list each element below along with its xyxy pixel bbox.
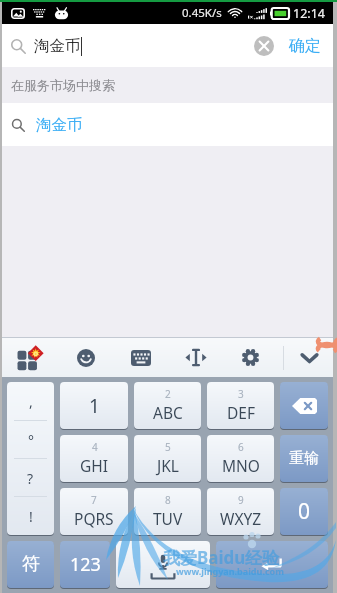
button[interactable]: 符 bbox=[7, 541, 54, 588]
button[interactable]: 确定 bbox=[281, 24, 333, 67]
staticText: 123 bbox=[70, 552, 101, 577]
staticText: 5 bbox=[165, 440, 171, 454]
staticText: 符 bbox=[22, 553, 40, 576]
button[interactable]: 重输 bbox=[280, 435, 328, 482]
staticText: ABC bbox=[153, 402, 183, 423]
staticText: 4 bbox=[92, 440, 98, 454]
staticText: 重输 bbox=[289, 449, 319, 468]
other: Backspace bbox=[292, 398, 317, 414]
staticText: PQRS bbox=[74, 508, 114, 529]
staticText: ? bbox=[27, 469, 34, 488]
button[interactable]: Space / voice input bbox=[116, 541, 210, 588]
staticText: 1 bbox=[89, 393, 100, 419]
staticText: 淘金币 bbox=[34, 36, 81, 56]
button[interactable]: Move cursor bbox=[168, 338, 223, 377]
staticText: 淘金币 bbox=[36, 115, 83, 135]
staticText: 确定 bbox=[289, 36, 321, 56]
button[interactable]: Apps bbox=[2, 338, 58, 377]
button[interactable]: 6 bbox=[207, 435, 274, 482]
staticText: 8 bbox=[165, 493, 171, 507]
staticText: 在服务市场中搜索 bbox=[11, 77, 115, 93]
staticText: DEF bbox=[227, 402, 255, 423]
button[interactable]: Clear text bbox=[247, 24, 281, 67]
staticText: , bbox=[29, 392, 33, 411]
staticText: 12:14 bbox=[293, 5, 325, 22]
button[interactable]: 7 bbox=[60, 488, 128, 535]
button[interactable]: 3 bbox=[207, 382, 274, 429]
button[interactable]: 5 bbox=[134, 435, 201, 482]
button[interactable]: , bbox=[7, 382, 54, 421]
button[interactable]: ? bbox=[7, 459, 54, 497]
button[interactable]: 123 bbox=[60, 541, 110, 588]
other: Enter bbox=[260, 556, 284, 573]
staticText: WXYZ bbox=[220, 508, 262, 529]
button[interactable]: 1 bbox=[60, 382, 128, 429]
button[interactable]: 2 bbox=[134, 382, 201, 429]
staticText: ! bbox=[29, 507, 33, 526]
staticText: 0 bbox=[298, 497, 311, 526]
button[interactable]: 8 bbox=[134, 488, 201, 535]
button[interactable]: Keyboard bbox=[113, 338, 168, 377]
staticText: 2 bbox=[165, 387, 171, 401]
staticText: 6 bbox=[238, 440, 244, 454]
staticText: 7 bbox=[91, 493, 97, 507]
button[interactable]: Settings bbox=[223, 338, 278, 377]
staticText: MNO bbox=[222, 455, 260, 476]
staticText: 我爱Baidu经验 bbox=[163, 546, 280, 569]
button[interactable]: Enter bbox=[216, 541, 328, 588]
other: Space / voice input bbox=[148, 553, 178, 581]
button[interactable]: 0 bbox=[280, 488, 328, 535]
button[interactable]: 淘金币 bbox=[2, 103, 333, 146]
staticText: 9 bbox=[238, 493, 244, 507]
button[interactable]: Hide keyboard bbox=[278, 338, 333, 377]
button[interactable]: Backspace bbox=[280, 382, 328, 429]
button[interactable]: ! bbox=[7, 497, 54, 535]
staticText: 0.45K/s bbox=[182, 5, 222, 21]
staticText: ° bbox=[28, 431, 34, 450]
button[interactable]: 4 bbox=[60, 435, 128, 482]
button[interactable]: ° bbox=[7, 421, 54, 459]
staticText: JKL bbox=[157, 455, 179, 476]
staticText: www.jingyan.baidu.com bbox=[176, 565, 284, 577]
staticText: GHI bbox=[80, 455, 109, 476]
button[interactable]: Emoji bbox=[58, 338, 113, 377]
button[interactable]: 9 bbox=[207, 488, 274, 535]
staticText: 3 bbox=[238, 387, 244, 401]
staticText: TUV bbox=[153, 508, 183, 529]
